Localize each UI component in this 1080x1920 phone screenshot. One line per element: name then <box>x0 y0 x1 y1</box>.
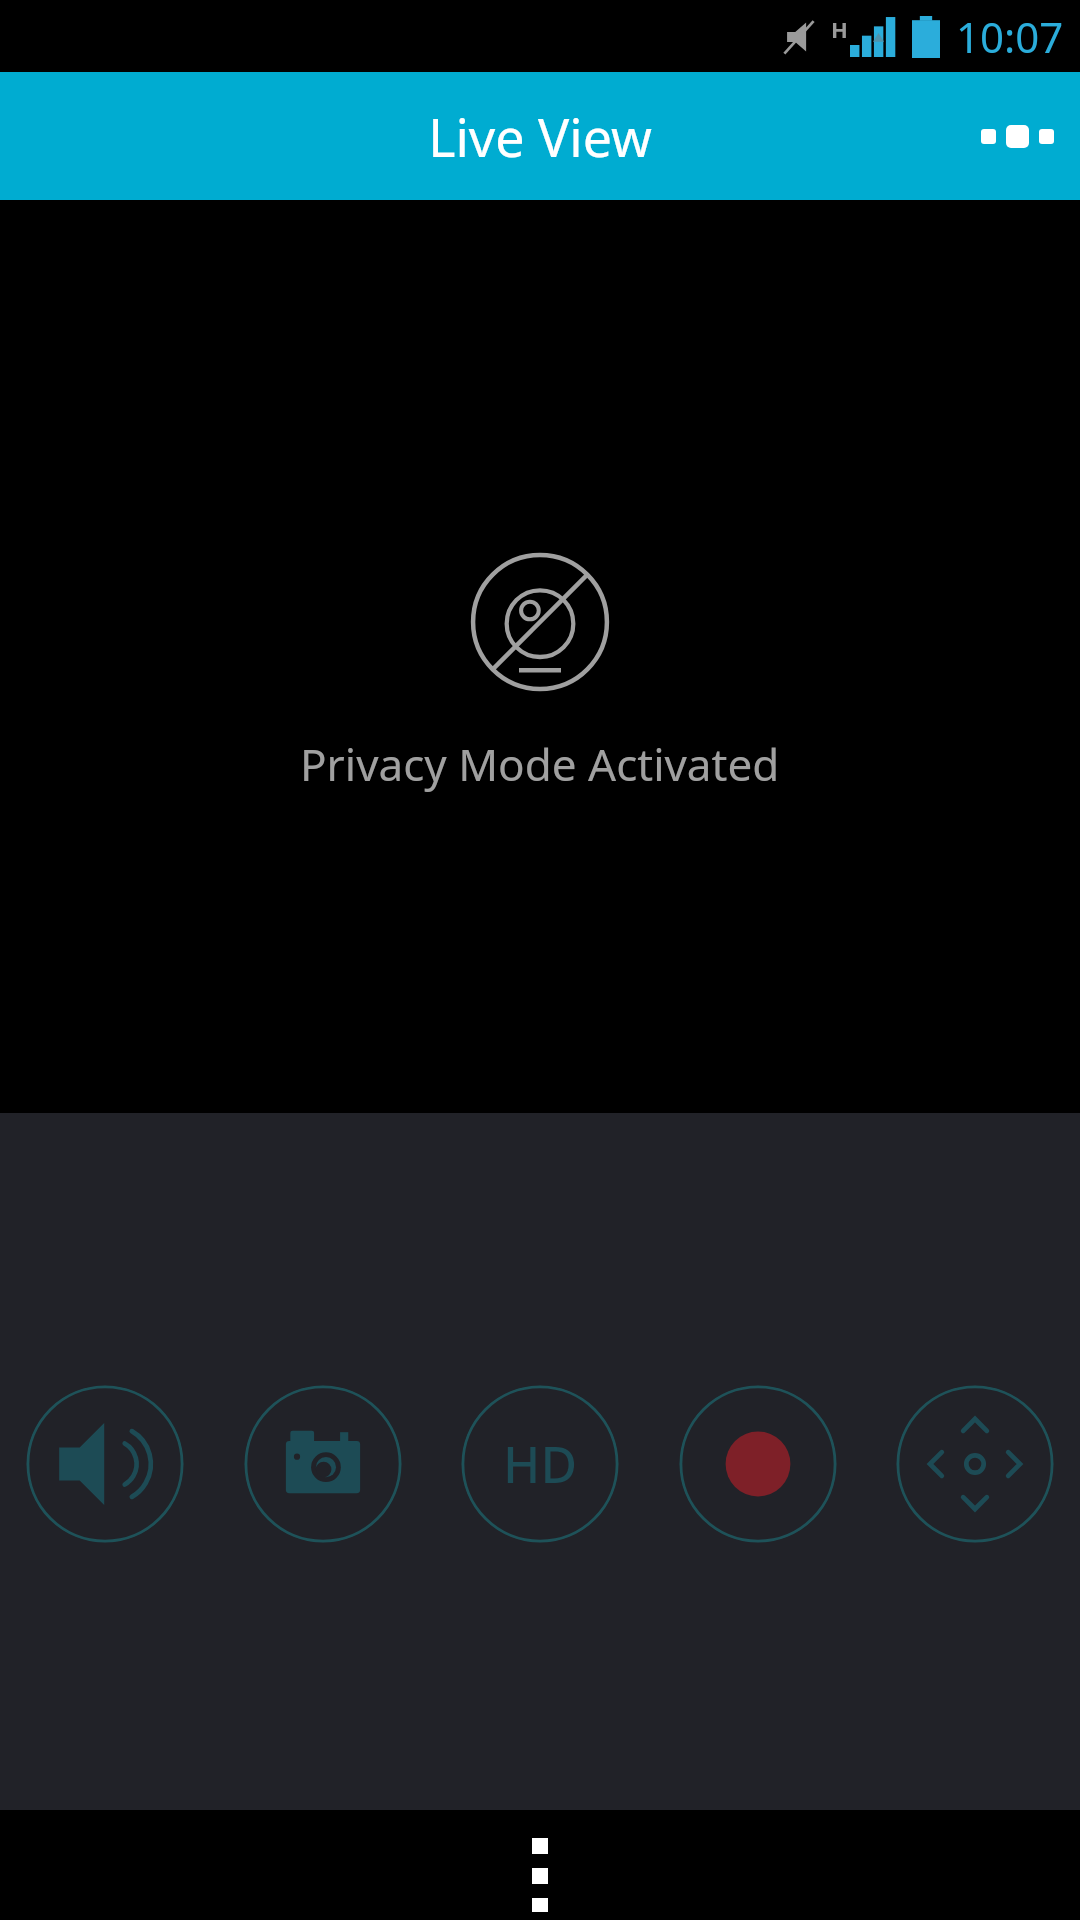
staticText: H <box>831 14 848 44</box>
staticText: 10:07 <box>956 8 1064 65</box>
button[interactable]: Pan and tilt <box>896 1385 1054 1543</box>
staticText: Privacy Mode Activated <box>300 734 780 794</box>
button[interactable]: Menu <box>488 1820 592 1920</box>
staticText: HD <box>503 1430 577 1498</box>
staticText: Live View <box>428 101 652 172</box>
button[interactable]: Snapshot <box>244 1385 402 1543</box>
button[interactable]: Speaker <box>26 1385 184 1543</box>
button[interactable]: Record <box>679 1385 837 1543</box>
button[interactable]: More options <box>955 85 1080 188</box>
button[interactable]: HD <box>461 1385 619 1543</box>
